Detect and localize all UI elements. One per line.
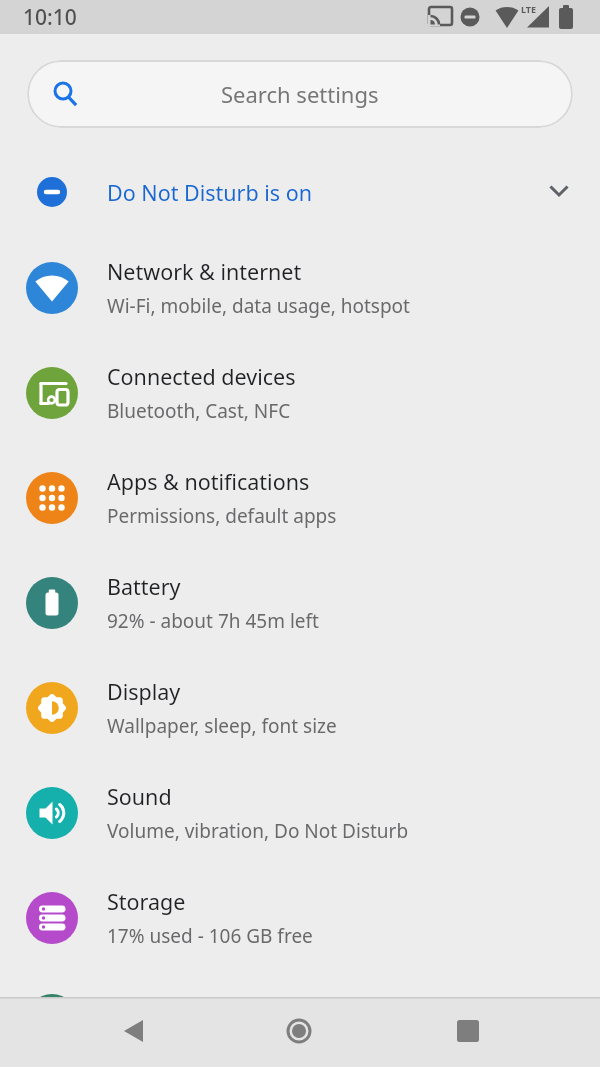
staticText: Battery xyxy=(107,572,181,601)
staticText: Wallpaper, sleep, font size xyxy=(107,713,337,739)
staticText: Permissions, default apps xyxy=(107,503,337,529)
staticText: Display xyxy=(107,677,181,706)
button[interactable] xyxy=(0,997,200,1067)
staticText: 10:10 xyxy=(23,3,77,32)
staticText: Connected devices xyxy=(107,362,296,391)
staticText: Search settings xyxy=(221,79,379,109)
staticText: 92% - about 7h 45m left xyxy=(107,608,319,634)
staticText: Apps & notifications xyxy=(107,467,310,496)
button[interactable]: Battery xyxy=(0,550,600,655)
button[interactable]: Storage xyxy=(0,865,600,970)
button[interactable]: Search settings xyxy=(27,60,573,128)
staticText: Sound xyxy=(107,782,172,811)
button[interactable]: Do Not Disturb is on xyxy=(0,152,600,232)
staticText: Wi-Fi, mobile, data usage, hotspot xyxy=(107,293,410,319)
button[interactable]: Sound xyxy=(0,760,600,865)
button[interactable]: Connected devices xyxy=(0,340,600,445)
button[interactable] xyxy=(200,997,400,1067)
button[interactable] xyxy=(400,997,600,1067)
staticText: Do Not Disturb is on xyxy=(107,178,313,207)
staticText: Bluetooth, Cast, NFC xyxy=(107,398,291,424)
staticText: Network & internet xyxy=(107,257,302,286)
button[interactable]: Network & internet xyxy=(0,235,600,340)
staticText: Volume, vibration, Do Not Disturb xyxy=(107,818,409,844)
staticText: 17% used - 106 GB free xyxy=(107,923,313,949)
staticText: Storage xyxy=(107,887,186,916)
staticText: LTE xyxy=(521,3,537,15)
button[interactable]: Display xyxy=(0,655,600,760)
button[interactable]: Apps & notifications xyxy=(0,445,600,550)
